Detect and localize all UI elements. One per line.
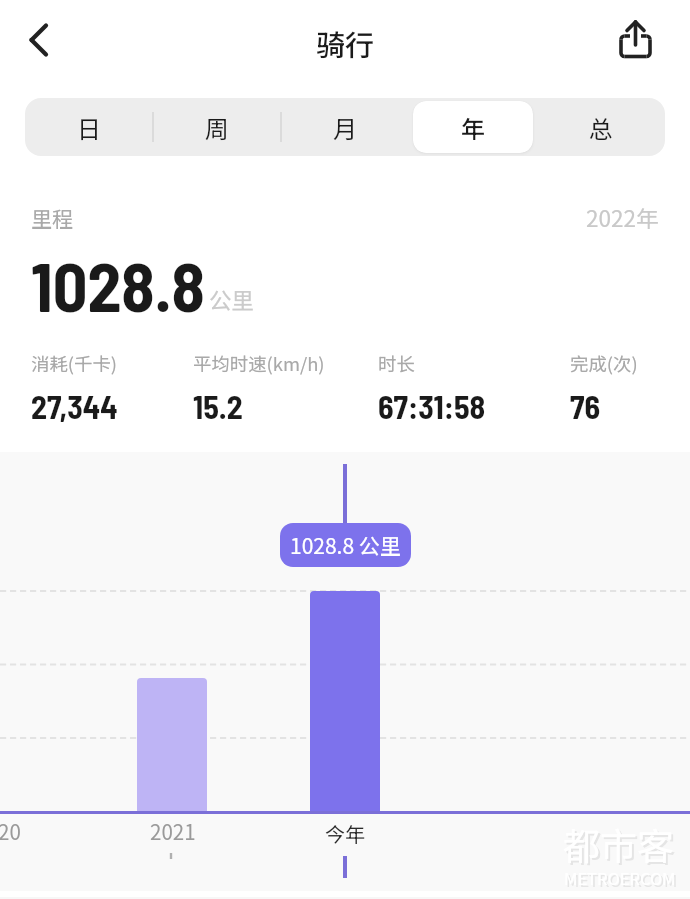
button[interactable]: Back [6,7,70,71]
button[interactable]: 周 [157,101,277,153]
staticText: 67:31:58 [378,387,486,425]
button[interactable]: 日 [29,101,149,153]
staticText: 里程 [31,203,73,233]
staticText: 76 [570,387,601,425]
staticText: 周 [205,110,229,145]
staticText: 时长 [378,350,415,377]
staticText: 20 [0,816,21,846]
staticText: 日 [77,110,101,145]
staticText: 都市客 [565,819,676,873]
staticText: 年 [461,110,485,145]
staticText: 完成(次) [570,350,638,377]
staticText: 2021 [150,816,196,846]
staticText: 平均时速(km/h) [193,350,325,377]
staticText: 骑行 [316,22,375,64]
staticText: METROERCOM [564,866,676,890]
button[interactable]: 月 [285,101,405,153]
staticText: 1028.8 公里 [290,530,401,560]
staticText: 2022年 [586,201,659,234]
staticText: 都市客 [563,817,674,871]
button[interactable]: 年 [413,101,533,153]
staticText: 公里 [209,283,255,316]
staticText: 消耗(千卡) [31,350,117,377]
staticText: 今年 [325,819,365,848]
staticText: 1028.8 [31,244,205,326]
staticText: 月 [333,110,357,145]
staticText: 27,344 [31,387,118,425]
button[interactable]: Share [604,7,668,71]
staticText: METROERCOM [566,868,678,892]
button[interactable]: 总 [541,101,661,153]
staticText: 总 [589,110,613,145]
staticText: 15.2 [193,387,243,425]
